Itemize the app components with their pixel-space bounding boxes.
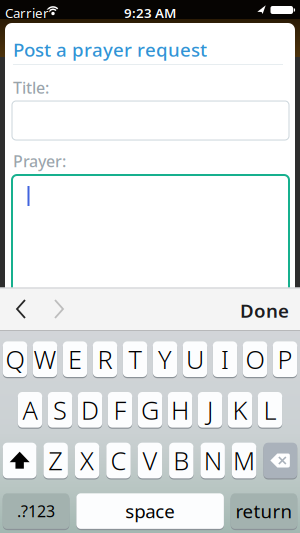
button[interactable]: A [18, 392, 42, 428]
button[interactable]: B [169, 443, 193, 478]
staticText: J [207, 393, 213, 427]
staticText: space [125, 499, 175, 523]
staticText: H [171, 393, 189, 427]
button[interactable]: S [48, 392, 72, 428]
staticText: E [68, 342, 82, 376]
staticText: Post a prayer request [13, 37, 207, 62]
staticText: I [221, 342, 229, 376]
staticText: Title: [13, 77, 49, 98]
button[interactable]: Q [3, 341, 27, 377]
staticText: L [263, 393, 276, 427]
staticText: Y [158, 342, 172, 376]
staticText: V [142, 444, 157, 477]
staticText: K [232, 393, 247, 427]
button[interactable]: X [75, 443, 99, 478]
button[interactable]: .?123 [3, 493, 69, 529]
button[interactable]: space [76, 493, 224, 529]
staticText: M [233, 444, 255, 477]
staticText: P [277, 342, 292, 376]
staticText: Q [5, 342, 24, 376]
button[interactable]: return [231, 493, 297, 529]
button[interactable]: Y [153, 341, 177, 377]
button[interactable] [12, 101, 289, 140]
staticText: D [81, 393, 99, 427]
button[interactable] [3, 443, 36, 478]
button[interactable]: N [200, 443, 225, 478]
button[interactable]: D [78, 392, 102, 428]
staticText: Carrier [5, 4, 49, 22]
button[interactable]: U [183, 341, 207, 377]
button[interactable]: L [258, 392, 282, 428]
button[interactable]: I [213, 341, 237, 377]
button[interactable]: T [123, 341, 147, 377]
staticText: X [80, 444, 94, 477]
staticText: A [22, 393, 37, 427]
staticText: C [110, 444, 126, 477]
staticText: W [33, 342, 56, 376]
button[interactable]: O [243, 341, 267, 377]
staticText: .?123 [17, 500, 55, 522]
staticText: N [204, 444, 222, 477]
staticText: T [128, 342, 141, 376]
staticText: O [245, 342, 264, 376]
button[interactable]: J [198, 392, 222, 428]
button[interactable]: R [93, 341, 117, 377]
staticText: R [97, 342, 112, 376]
staticText: U [186, 342, 204, 376]
button[interactable]: G [138, 392, 162, 428]
button[interactable]: Done [240, 298, 300, 323]
staticText: G [141, 393, 159, 427]
button[interactable]: C [106, 443, 131, 478]
button[interactable]: W [33, 341, 57, 377]
staticText: Prayer: [13, 150, 66, 172]
staticText: 9:23 AM [124, 4, 176, 22]
button[interactable]: H [168, 392, 192, 428]
staticText: return [235, 499, 292, 523]
staticText: F [113, 393, 126, 427]
staticText: B [173, 444, 189, 477]
staticText: S [53, 393, 67, 427]
staticText: Done [240, 298, 289, 323]
button[interactable]: V [138, 443, 162, 478]
button[interactable]: Z [43, 443, 68, 478]
button[interactable]: F [108, 392, 132, 428]
staticText: Z [48, 444, 63, 477]
button[interactable] [6, 294, 36, 324]
button[interactable]: K [228, 392, 252, 428]
button[interactable]: P [273, 341, 297, 377]
button[interactable]: M [232, 443, 256, 478]
button[interactable]: E [63, 341, 87, 377]
button[interactable] [263, 443, 297, 478]
button[interactable] [44, 294, 74, 324]
button[interactable] [12, 175, 289, 295]
